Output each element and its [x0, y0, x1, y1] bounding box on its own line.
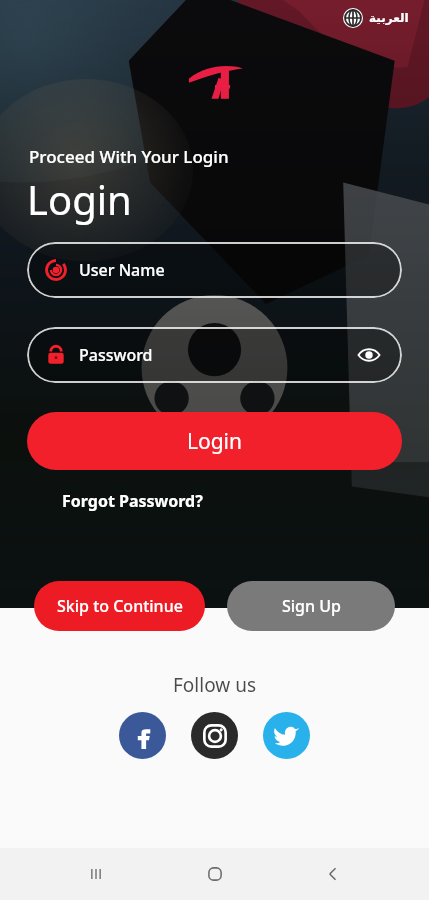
button[interactable]: Show password [354, 340, 384, 370]
other: Change language [343, 8, 363, 28]
staticText: Skip to Continue [57, 595, 183, 617]
button[interactable]: Forgot Password? [58, 488, 207, 514]
staticText: Follow us [173, 672, 256, 698]
staticText: Login [187, 427, 243, 456]
staticText: العربية [369, 11, 409, 25]
button[interactable]: Sign Up [227, 581, 395, 631]
button[interactable]: Skip to Continue [34, 581, 205, 631]
button[interactable]: User Name [27, 242, 402, 298]
button[interactable]: Recent apps [73, 851, 119, 897]
button[interactable]: Twitter [263, 712, 310, 759]
staticText: Forgot Password? [62, 490, 203, 512]
staticText: Login [27, 172, 132, 226]
button[interactable]: Login [27, 412, 402, 470]
button[interactable]: Back [310, 851, 356, 897]
staticText: Password [79, 344, 354, 366]
button[interactable]: Password [27, 327, 402, 383]
staticText: Sign Up [282, 595, 341, 617]
button[interactable]: Facebook [119, 712, 166, 759]
staticText: User Name [79, 259, 165, 281]
button[interactable]: Instagram [191, 712, 238, 759]
staticText: Proceed With Your Login [29, 145, 229, 168]
button[interactable]: Home [192, 851, 238, 897]
button[interactable]: Change language [337, 4, 415, 32]
